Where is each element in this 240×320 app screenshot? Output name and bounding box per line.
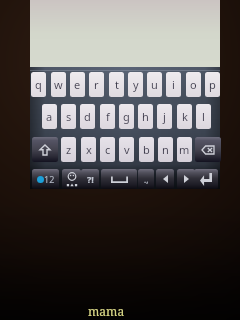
button[interactable]: n [158,137,173,162]
button[interactable]: q [31,72,46,97]
staticText: e [74,77,81,92]
staticText: q [35,77,42,92]
button[interactable]: m [177,137,192,162]
button[interactable]: Emoji [62,169,81,189]
button[interactable]: Punctuation [138,169,154,189]
button[interactable]: i [166,72,181,97]
button[interactable]: d [80,104,95,129]
staticText: h [142,109,149,124]
staticText: w [54,77,63,92]
staticText: t [115,77,119,92]
button[interactable]: e [70,72,85,97]
button[interactable]: r [89,72,104,97]
button[interactable]: z [61,137,76,162]
button[interactable]: g [119,104,134,129]
button[interactable]: b [139,137,154,162]
button[interactable]: Enter [194,169,218,189]
button[interactable]: Shift [32,137,58,162]
staticText: f [106,109,110,124]
button[interactable]: s [61,104,76,129]
button[interactable]: f [100,104,115,129]
staticText: j [163,109,166,124]
staticText: ?! [87,173,94,185]
staticText: i [172,77,175,92]
button[interactable]: u [147,72,162,97]
button[interactable]: Space [101,169,137,189]
staticText: mama [88,303,125,319]
button[interactable]: Left [156,169,174,189]
button[interactable]: j [157,104,172,129]
staticText: l [202,109,205,124]
staticText: g [123,109,130,124]
button[interactable]: Right [177,169,195,189]
staticText: k [182,109,188,124]
button[interactable]: v [119,137,134,162]
staticText: m [179,142,190,157]
staticText: s [66,109,72,124]
staticText: r [94,77,99,92]
staticText: x [86,142,92,157]
button[interactable]: x [81,137,96,162]
staticText: d [84,109,91,124]
button[interactable]: p [205,72,220,97]
button[interactable]: t [109,72,124,97]
staticText: 12 [44,173,55,185]
staticText: p [209,77,216,92]
button[interactable]: y [128,72,143,97]
staticText: o [190,77,197,92]
button[interactable]: Numbers [32,169,59,189]
button[interactable]: o [186,72,201,97]
button[interactable]: a [42,104,57,129]
button[interactable]: h [138,104,153,129]
button[interactable]: l [196,104,211,129]
button[interactable]: w [51,72,66,97]
staticText: v [124,142,130,157]
staticText: a [46,109,53,124]
button[interactable]: c [100,137,115,162]
staticText: ., [144,174,149,185]
staticText: n [162,142,169,157]
staticText: c [105,142,111,157]
button[interactable]: k [177,104,192,129]
button[interactable]: Symbols [81,169,99,189]
staticText: z [66,142,72,157]
staticText: y [133,77,139,92]
staticText: u [151,77,158,92]
staticText: b [143,142,150,157]
button[interactable]: Backspace [195,137,221,162]
